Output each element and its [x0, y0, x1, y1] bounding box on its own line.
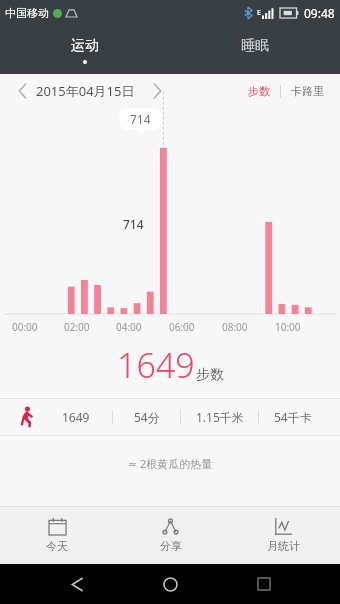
button[interactable]: Recents	[247, 567, 281, 601]
button[interactable]: 步数	[244, 80, 274, 102]
staticText: 08:00	[222, 320, 248, 334]
button[interactable]: Home	[153, 567, 187, 601]
staticText: 步数	[196, 366, 224, 384]
button[interactable]: Back	[60, 567, 94, 601]
button[interactable]: Next day	[147, 81, 167, 101]
staticText: 1649	[117, 342, 195, 388]
staticText: 卡路里	[291, 84, 324, 98]
staticText: 714	[130, 111, 151, 127]
staticText: 04:00	[116, 320, 142, 334]
staticText: ≈ 2根黄瓜的热量	[0, 456, 340, 471]
staticText: 睡眠	[241, 37, 269, 55]
button[interactable]: Share	[114, 507, 227, 564]
staticText: 714	[123, 216, 144, 232]
staticText: 中国移动	[5, 6, 49, 20]
staticText: 运动	[71, 37, 99, 55]
staticText: 54分	[134, 409, 160, 425]
button[interactable]: Previous day	[12, 81, 32, 101]
staticText: 步数	[248, 84, 270, 98]
staticText: 09:48	[304, 5, 335, 21]
other: Share	[162, 518, 179, 535]
staticText: 02:00	[64, 320, 90, 334]
staticText: 今天	[46, 539, 68, 553]
staticText: 2015年04月15日	[36, 82, 135, 100]
staticText: 06:00	[169, 320, 195, 334]
staticText: 月统计	[267, 539, 300, 553]
staticText: 00:00	[12, 320, 38, 334]
button[interactable]: 运动	[0, 26, 170, 74]
button[interactable]: 卡路里	[287, 80, 328, 102]
staticText: 54千卡	[274, 409, 312, 425]
staticText: 1649	[62, 409, 90, 425]
staticText: 1.15千米	[196, 409, 244, 425]
button[interactable]: 睡眠	[170, 26, 340, 74]
staticText: 10:00	[275, 320, 301, 334]
staticText: 分享	[160, 539, 182, 553]
button[interactable]: 月统计	[227, 507, 340, 564]
staticText: E	[257, 8, 261, 18]
button[interactable]: 今天	[0, 507, 114, 564]
